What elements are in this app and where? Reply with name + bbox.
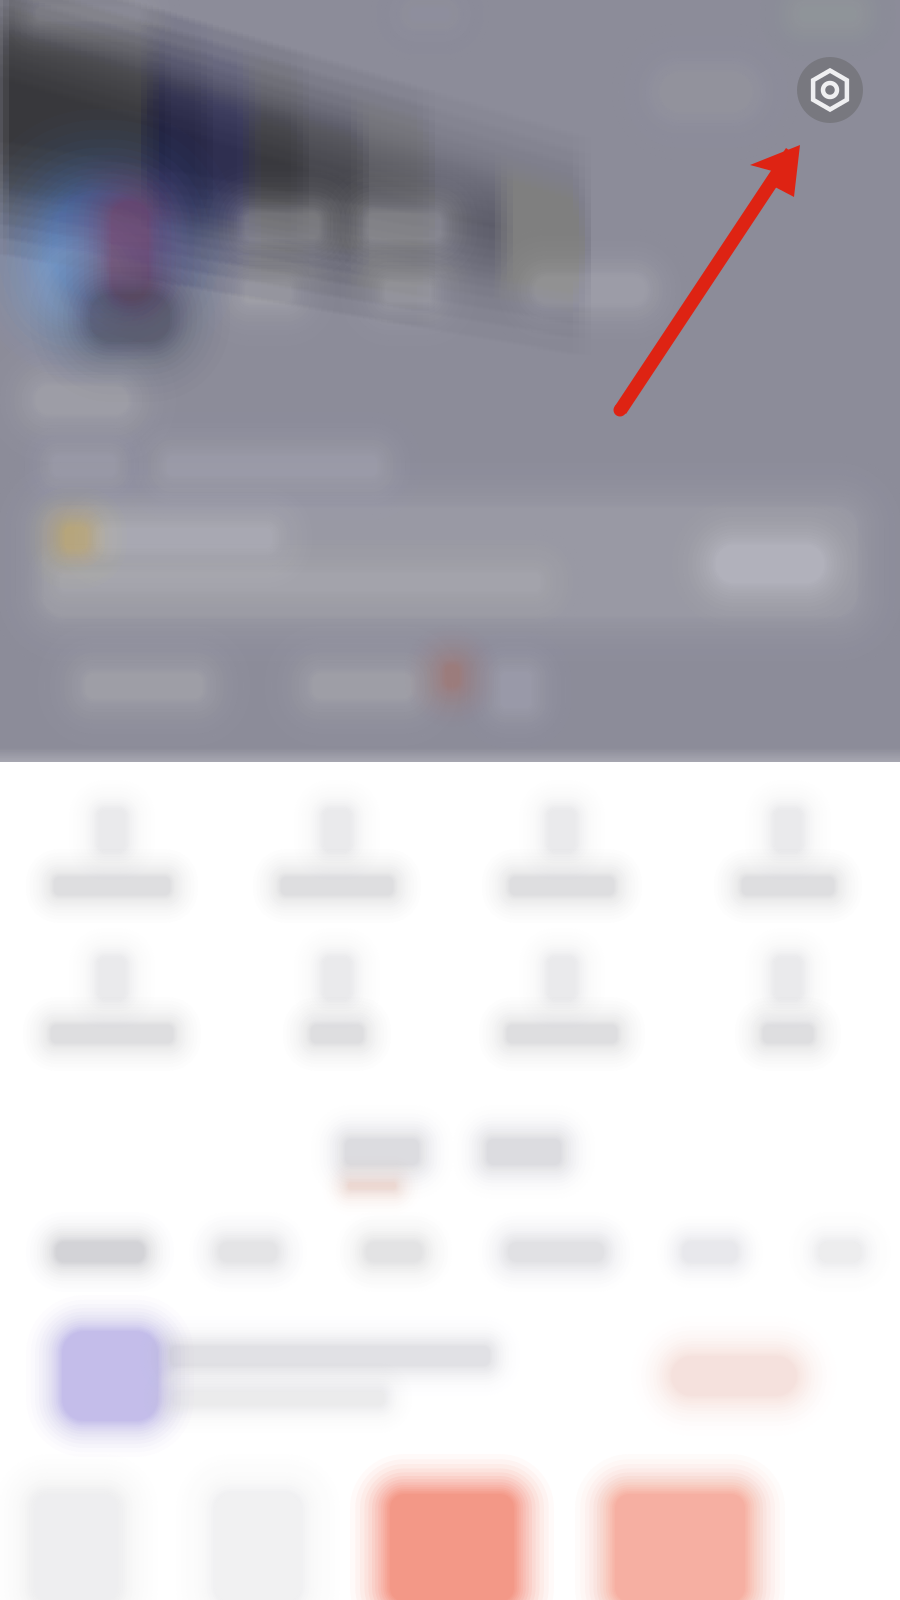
- button[interactable]: Menu item: [350, 1116, 550, 1246]
- button[interactable]: Promotion: [0, 1116, 900, 1246]
- button[interactable]: Menu item: [350, 1116, 550, 1246]
- button[interactable]: Product: [365, 1106, 535, 1256]
- button[interactable]: Menu item: [350, 1116, 550, 1246]
- button[interactable]: Filter: [385, 1153, 515, 1209]
- button[interactable]: Filter: [385, 1153, 515, 1209]
- button[interactable]: Filter: [385, 1153, 515, 1209]
- button[interactable]: Product: [365, 1106, 535, 1256]
- button[interactable]: Tab one: [385, 1136, 515, 1226]
- button[interactable]: Tab two: [385, 1136, 515, 1226]
- button[interactable]: Menu item: [350, 1116, 550, 1246]
- button[interactable]: Settings: [784, 44, 876, 136]
- button[interactable]: Filter: [385, 1153, 515, 1209]
- button[interactable]: Menu item: [350, 1116, 550, 1246]
- button[interactable]: Product: [365, 1106, 535, 1256]
- button[interactable]: Menu item: [350, 1116, 550, 1246]
- button[interactable]: Filter: [385, 1153, 515, 1209]
- button[interactable]: Menu item: [350, 1116, 550, 1246]
- button[interactable]: Filter: [385, 1153, 515, 1209]
- button[interactable]: Product: [365, 1106, 535, 1256]
- button[interactable]: Menu item: [350, 1116, 550, 1246]
